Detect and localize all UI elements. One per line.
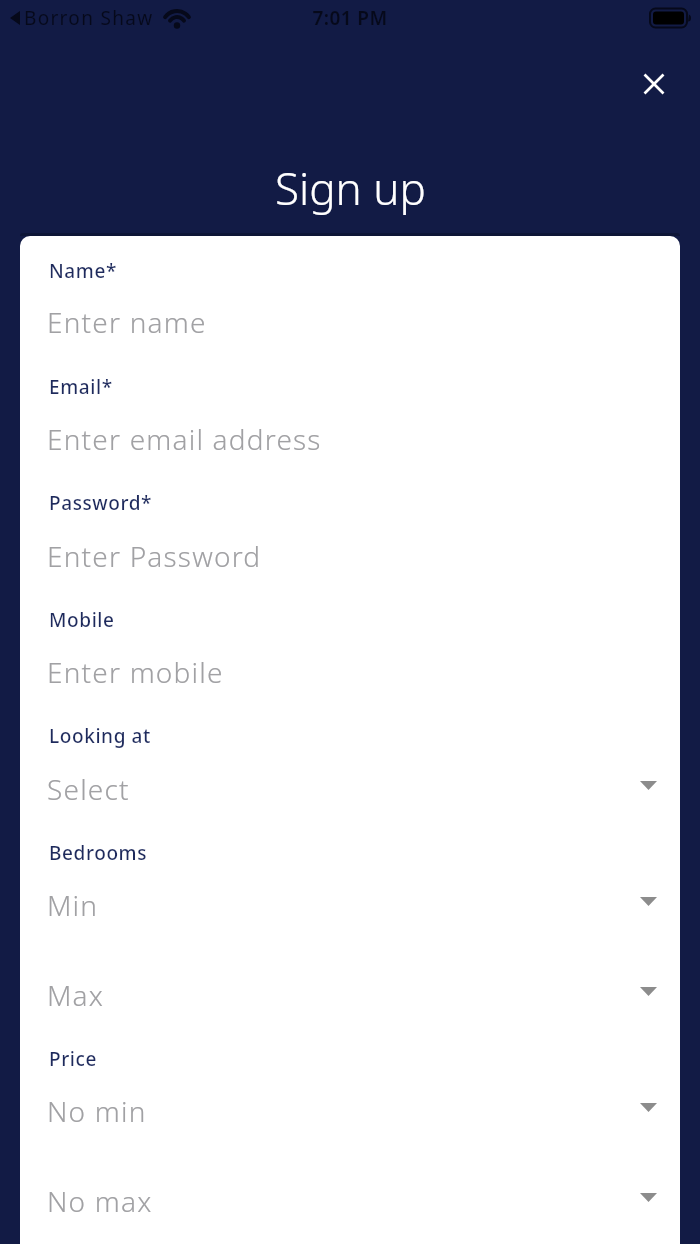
- staticText: Enter name: [47, 303, 207, 341]
- button[interactable]: Min: [47, 879, 657, 931]
- button[interactable]: Enter email address: [47, 413, 657, 465]
- button[interactable]: Enter mobile: [47, 646, 657, 698]
- staticText: 7:01 PM: [0, 5, 700, 31]
- staticText: Mobile: [49, 607, 115, 633]
- button[interactable]: No min: [47, 1085, 657, 1137]
- button[interactable]: No max: [47, 1175, 657, 1227]
- staticText: Email*: [49, 374, 113, 400]
- staticText: No max: [47, 1182, 153, 1220]
- staticText: No min: [47, 1092, 147, 1130]
- staticText: Password*: [49, 490, 153, 516]
- staticText: Min: [47, 886, 99, 924]
- button[interactable]: [634, 64, 674, 104]
- staticText: Enter mobile: [47, 653, 224, 691]
- button[interactable]: Enter Password: [47, 530, 657, 582]
- staticText: Select: [47, 770, 130, 808]
- staticText: Sign up: [275, 158, 426, 218]
- button[interactable]: Enter name: [47, 296, 657, 348]
- staticText: Enter Password: [47, 537, 262, 575]
- staticText: Borron Shaw: [24, 5, 154, 31]
- button[interactable]: Max: [47, 969, 657, 1021]
- button[interactable]: Select: [47, 763, 657, 815]
- staticText: Price: [49, 1046, 97, 1072]
- staticText: Enter email address: [47, 420, 322, 458]
- staticText: Name*: [49, 258, 117, 284]
- staticText: Bedrooms: [49, 840, 148, 866]
- staticText: Looking at: [49, 723, 151, 749]
- staticText: Max: [47, 976, 105, 1014]
